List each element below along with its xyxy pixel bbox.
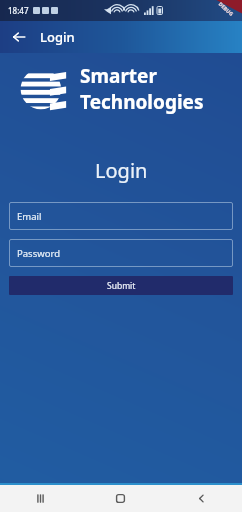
- button[interactable]: Recent apps: [0, 485, 80, 512]
- staticText: Submit: [107, 280, 136, 292]
- staticText: Technologies: [80, 89, 204, 115]
- staticText: Smarter: [80, 63, 157, 89]
- staticText: Login: [40, 28, 75, 46]
- button[interactable]: Back: [6, 24, 32, 50]
- button[interactable]: Submit: [9, 276, 233, 295]
- staticText: Password: [17, 247, 60, 260]
- button[interactable]: Back: [161, 485, 242, 512]
- button[interactable]: Password: [9, 239, 233, 267]
- staticText: Login: [95, 157, 148, 184]
- staticText: Email: [17, 210, 42, 223]
- button[interactable]: Email: [9, 202, 233, 230]
- staticText: DEBUG: [217, 1, 235, 18]
- staticText: 18:47: [8, 5, 29, 16]
- button[interactable]: Home: [80, 485, 161, 512]
